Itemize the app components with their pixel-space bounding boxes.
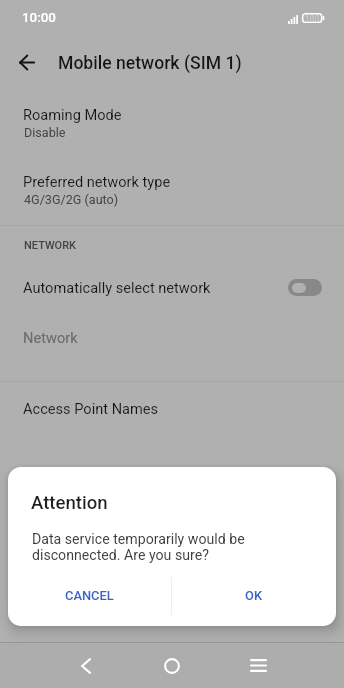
staticText: Data service temporarily would be discon… [32, 531, 281, 563]
button[interactable]: Back [63, 643, 109, 688]
button[interactable]: Network [0, 329, 344, 362]
button[interactable]: Preferred network type [0, 173, 344, 206]
staticText: Network [23, 329, 78, 346]
staticText: Roaming Mode [23, 106, 122, 123]
button[interactable]: CANCEL [8, 565, 171, 626]
staticText: CANCEL [65, 588, 114, 603]
button[interactable]: Automatically select network [0, 269, 344, 305]
staticText: Attention [31, 492, 108, 514]
staticText: Preferred network type [23, 173, 171, 190]
staticText: Disable [24, 125, 66, 140]
staticText: 10:00 [22, 10, 56, 26]
staticText: Mobile network (SIM 1) [58, 53, 242, 74]
button[interactable]: Roaming Mode [0, 106, 344, 139]
staticText: OK [245, 588, 263, 603]
staticText: 100 [302, 14, 322, 24]
staticText: 4G/3G/2G (auto) [24, 192, 119, 207]
button[interactable]: Recent apps [235, 643, 281, 688]
staticText: NETWORK [24, 239, 77, 252]
staticText: Automatically select network [23, 279, 288, 296]
button[interactable]: Access Point Names [0, 400, 344, 433]
button[interactable]: Home [149, 643, 195, 688]
button[interactable]: OK [172, 565, 336, 626]
button[interactable]: Back [8, 43, 46, 81]
staticText: Access Point Names [23, 400, 159, 417]
